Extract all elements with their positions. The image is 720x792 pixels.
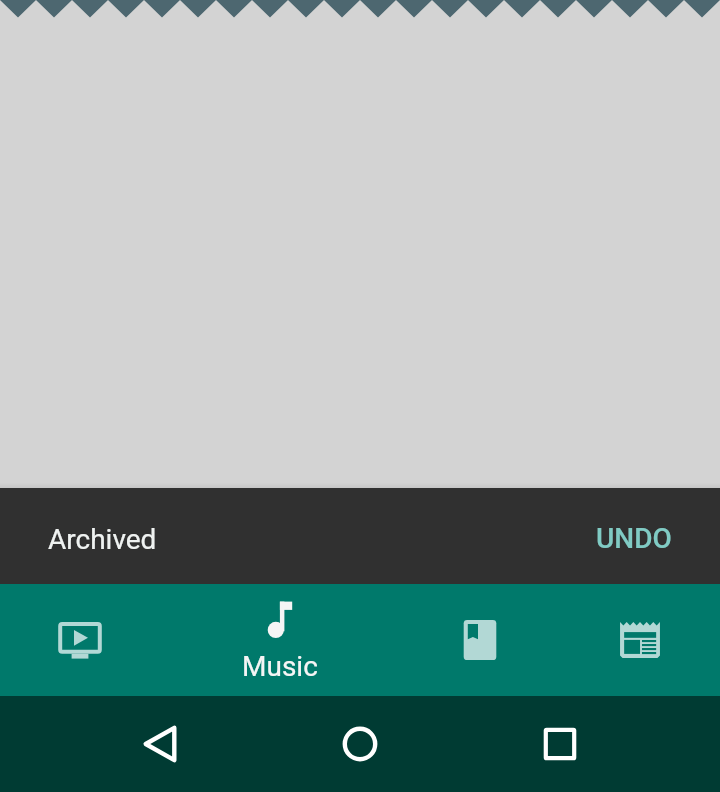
button[interactable]: News [560, 584, 720, 696]
staticText: Music [242, 650, 318, 683]
button[interactable]: Music [160, 584, 400, 696]
button[interactable]: UNDO [568, 488, 720, 584]
button[interactable]: Recents [524, 708, 596, 780]
staticText: Archived [48, 523, 157, 556]
button[interactable]: Back [124, 708, 196, 780]
button[interactable]: Books [400, 584, 560, 696]
button[interactable]: Home [324, 708, 396, 780]
button[interactable]: Video [0, 584, 160, 696]
staticText: UNDO [596, 522, 672, 555]
